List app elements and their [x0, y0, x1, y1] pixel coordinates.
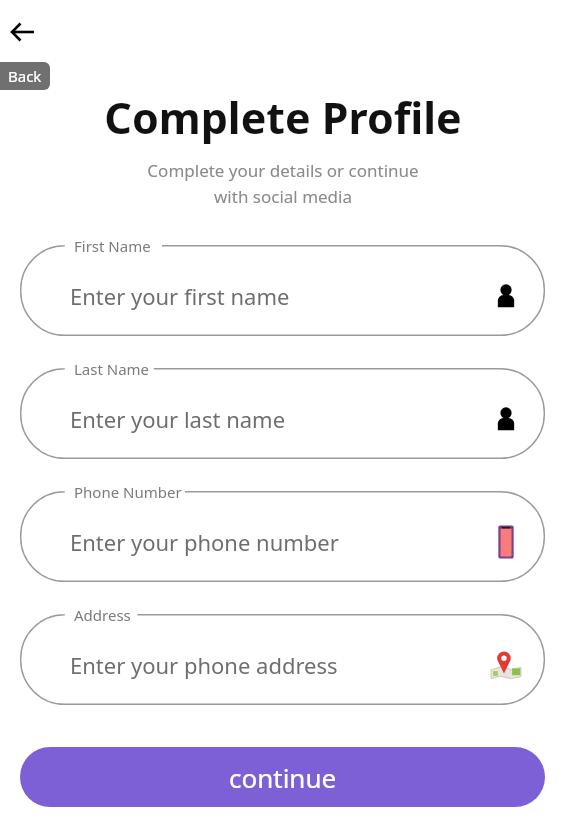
staticText: Enter your last name	[70, 404, 286, 434]
staticText: Complete your details or continue with s…	[147, 159, 419, 208]
staticText: Enter your phone address	[70, 650, 338, 680]
staticText: Enter your first name	[70, 281, 290, 311]
button[interactable]: continue	[20, 747, 545, 807]
button[interactable]: First Name	[20, 245, 545, 336]
button[interactable]: Back	[4, 13, 42, 51]
staticText: First Name	[74, 236, 151, 256]
staticText: Last Name	[74, 359, 150, 379]
staticText: Back	[8, 66, 42, 86]
staticText: Address	[74, 605, 131, 625]
staticText: continue	[229, 760, 337, 795]
button[interactable]: Back	[0, 62, 50, 90]
button[interactable]: Last Name	[20, 368, 545, 459]
staticText: Enter your phone number	[70, 527, 339, 557]
staticText: Complete Profile	[104, 88, 462, 147]
staticText: Phone Number	[74, 482, 182, 502]
button[interactable]: Phone Number	[20, 491, 545, 582]
button[interactable]: Address	[20, 614, 545, 705]
